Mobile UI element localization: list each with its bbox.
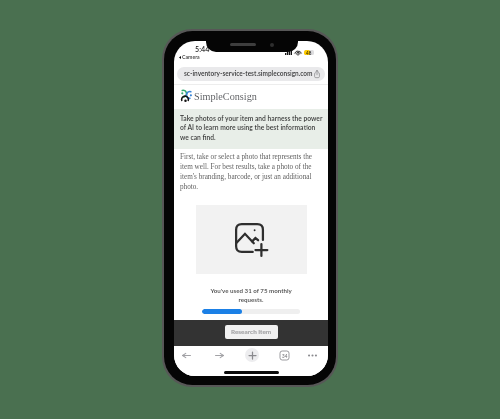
button[interactable]: Add a photo (196, 205, 307, 274)
button[interactable]: Research Item (225, 325, 278, 339)
button[interactable]: New tab (242, 345, 262, 365)
staticText: You've used 31 of 75 monthly requests. (201, 287, 301, 304)
staticText: SimpleConsign (194, 91, 257, 102)
staticText: 34 (282, 353, 288, 359)
button[interactable]: Back (176, 345, 196, 365)
staticText: Camera (182, 54, 200, 60)
button[interactable]: More (302, 345, 322, 365)
button[interactable]: Tabs (274, 345, 294, 365)
staticText: 5:44 (195, 45, 210, 54)
staticText: sc-inventory-service-test.simpleconsign.… (184, 70, 313, 78)
button[interactable]: sc-inventory-service-test.simpleconsign.… (177, 67, 325, 81)
staticText: Research Item (231, 328, 272, 336)
staticText: First, take or select a photo that repre… (180, 153, 325, 190)
staticText: Take photos of your item and harness the… (180, 114, 324, 141)
button[interactable]: Forward (209, 345, 229, 365)
staticText: 48 (306, 50, 312, 55)
